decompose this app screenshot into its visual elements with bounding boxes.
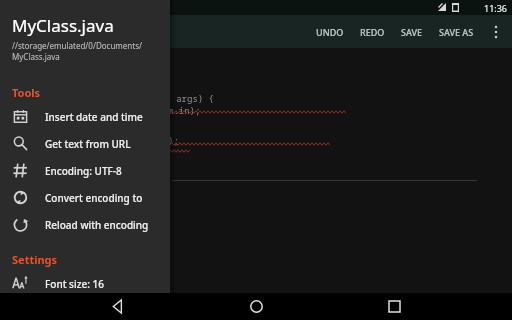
staticText: Insert date and time	[45, 110, 143, 124]
button[interactable]: Recent apps	[374, 293, 414, 320]
button[interactable]: Convert encoding to	[0, 184, 170, 211]
button[interactable]: Home	[236, 293, 276, 320]
staticText: Scanner sc = new Scanner(System.in);	[6, 104, 201, 116]
button[interactable]: SAVE AS	[431, 18, 482, 46]
button[interactable]: Get text from URL	[0, 130, 170, 157]
staticText: SAVE AS	[439, 26, 474, 38]
staticText: Convert encoding to	[45, 191, 143, 205]
button[interactable]: SAVE	[393, 18, 431, 46]
button[interactable]: More options	[482, 18, 510, 46]
button[interactable]: Reload with encoding	[0, 211, 170, 238]
staticText: Encoding: UTF-8	[45, 164, 122, 178]
staticText: 11:36	[484, 2, 508, 14]
button[interactable]: Encoding: UTF-8	[0, 157, 170, 184]
staticText: Tools	[12, 85, 41, 100]
staticText: Get text from URL	[45, 137, 131, 151]
staticText: Settings	[12, 252, 58, 267]
staticText: UNDO	[316, 26, 344, 38]
staticText: Font size: 16	[45, 277, 104, 291]
button[interactable]: UNDO	[308, 18, 352, 46]
staticText: Reload with encoding	[45, 218, 149, 232]
staticText: SAVE	[401, 26, 423, 38]
staticText: REDO	[360, 26, 385, 38]
button[interactable]: Insert date and time	[0, 103, 170, 130]
button[interactable]: REDO	[352, 18, 393, 46]
staticText: int n = sc.nextInt());	[60, 134, 179, 146]
button[interactable]: Back	[98, 293, 138, 320]
staticText: //storage/emulated/0/Documents/ MyClass.…	[12, 40, 142, 62]
staticText: public static void main(String[] args) {	[0, 92, 215, 104]
staticText: MyClass.java	[12, 14, 114, 37]
button[interactable]: Font size: 16	[0, 270, 170, 297]
